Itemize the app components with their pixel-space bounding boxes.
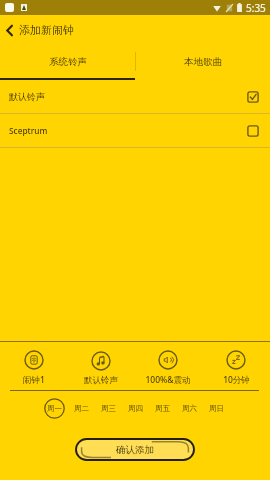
button[interactable]: 周三 [98, 398, 119, 419]
button[interactable]: 确认添加 [75, 438, 195, 461]
staticText: 默认铃声 [9, 91, 45, 102]
button[interactable]: 周二 [71, 398, 92, 419]
staticText: 默认铃声 [84, 375, 118, 386]
button[interactable]: 周六 [179, 398, 200, 419]
button[interactable]: 周日 [206, 398, 227, 419]
staticText: 系统铃声 [49, 56, 87, 68]
staticText: 周三 [101, 404, 116, 413]
staticText: 100%&震动 [145, 374, 191, 386]
staticText: 周四 [128, 404, 143, 413]
staticText: 添加新闹钟 [19, 23, 74, 37]
staticText: 周六 [182, 404, 197, 413]
button[interactable]: Sceptrum [0, 114, 270, 147]
staticText: 5:35 [246, 1, 266, 15]
staticText: 周二 [74, 404, 89, 413]
button[interactable]: 周一 [44, 398, 65, 419]
button[interactable]: 本地歌曲 [135, 45, 270, 78]
staticText: 本地歌曲 [184, 56, 222, 68]
staticText: 周日 [209, 404, 224, 413]
button[interactable]: 周四 [125, 398, 146, 419]
staticText: 周五 [155, 404, 170, 413]
button[interactable]: 系统铃声 [0, 45, 135, 78]
staticText: 周一 [47, 404, 62, 413]
staticText: 闹钟1 [23, 374, 45, 386]
button[interactable]: 默认铃声 [0, 80, 270, 113]
button[interactable]: Back [0, 15, 18, 45]
button[interactable]: 10分钟 [202, 350, 270, 386]
staticText: 10分钟 [223, 374, 250, 386]
button[interactable]: 周五 [152, 398, 173, 419]
button[interactable]: 默认铃声 [67, 351, 134, 386]
staticText: Sceptrum [9, 125, 48, 136]
button[interactable]: 闹钟1 [0, 350, 67, 386]
staticText: 确认添加 [116, 444, 154, 456]
button[interactable]: 100%&震动 [134, 350, 202, 386]
